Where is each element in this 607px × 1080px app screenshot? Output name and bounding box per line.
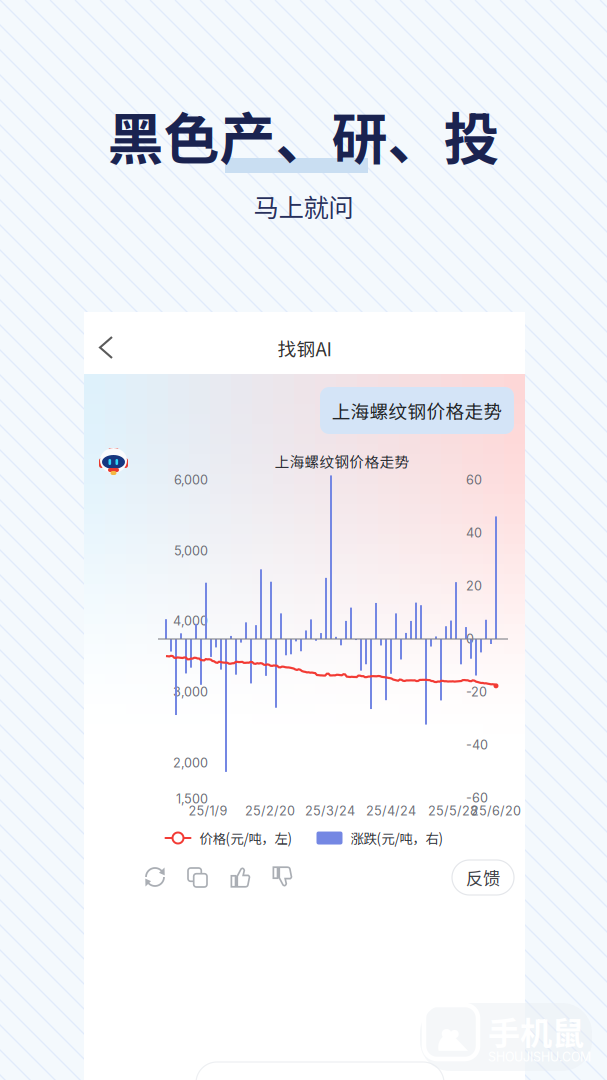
staticText: SHOUJISHU.COM xyxy=(488,1049,591,1064)
staticText: 25/4/24 xyxy=(366,803,416,819)
button[interactable]: Copy xyxy=(179,859,216,896)
staticText: 黑色产、研、投 xyxy=(107,94,499,176)
staticText: 25/6/20 xyxy=(471,803,521,819)
staticText: 20 xyxy=(466,578,482,594)
button[interactable]: Dislike xyxy=(264,858,301,896)
staticText: 涨跌(元/吨，右) xyxy=(350,828,443,848)
staticText: 25/2/20 xyxy=(245,803,295,819)
staticText: 4,000 xyxy=(173,613,208,629)
button[interactable]: Back xyxy=(86,323,126,372)
staticText: 40 xyxy=(466,525,482,541)
button[interactable]: 反馈 xyxy=(452,860,514,895)
button[interactable]: Regenerate xyxy=(136,858,174,896)
button[interactable]: Like xyxy=(222,858,259,896)
staticText: 2,000 xyxy=(173,755,208,771)
staticText: 25/5/28 xyxy=(428,803,478,819)
staticText: 上海螺纹钢价格走势 xyxy=(331,397,502,424)
staticText: 60 xyxy=(466,472,482,488)
button[interactable]: 上海螺纹钢价格走势 xyxy=(320,387,514,434)
staticText: 3,000 xyxy=(173,684,208,700)
staticText: -60 xyxy=(466,790,488,806)
staticText: -20 xyxy=(466,684,487,700)
staticText: 5,000 xyxy=(174,543,208,559)
staticText: 25/3/24 xyxy=(305,803,355,819)
staticText: 反馈 xyxy=(466,865,500,890)
staticText: -40 xyxy=(466,737,488,753)
staticText: 1,500 xyxy=(176,791,208,807)
staticText: 找钢AI xyxy=(277,334,331,361)
staticText: 上海螺纹钢价格走势 xyxy=(274,450,409,472)
staticText: 马上就问 xyxy=(253,188,353,224)
staticText: 0 xyxy=(466,631,474,647)
staticText: 6,000 xyxy=(174,472,208,488)
staticText: 手机鼠 xyxy=(488,1008,584,1054)
staticText: 价格(元/吨，左) xyxy=(199,828,292,848)
staticText: 25/1/9 xyxy=(188,803,227,819)
